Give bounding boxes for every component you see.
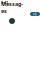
staticText: 9:41 — [1, 0, 8, 5]
staticText: Hi — [33, 11, 37, 17]
staticText: Messages — [1, 0, 23, 15]
